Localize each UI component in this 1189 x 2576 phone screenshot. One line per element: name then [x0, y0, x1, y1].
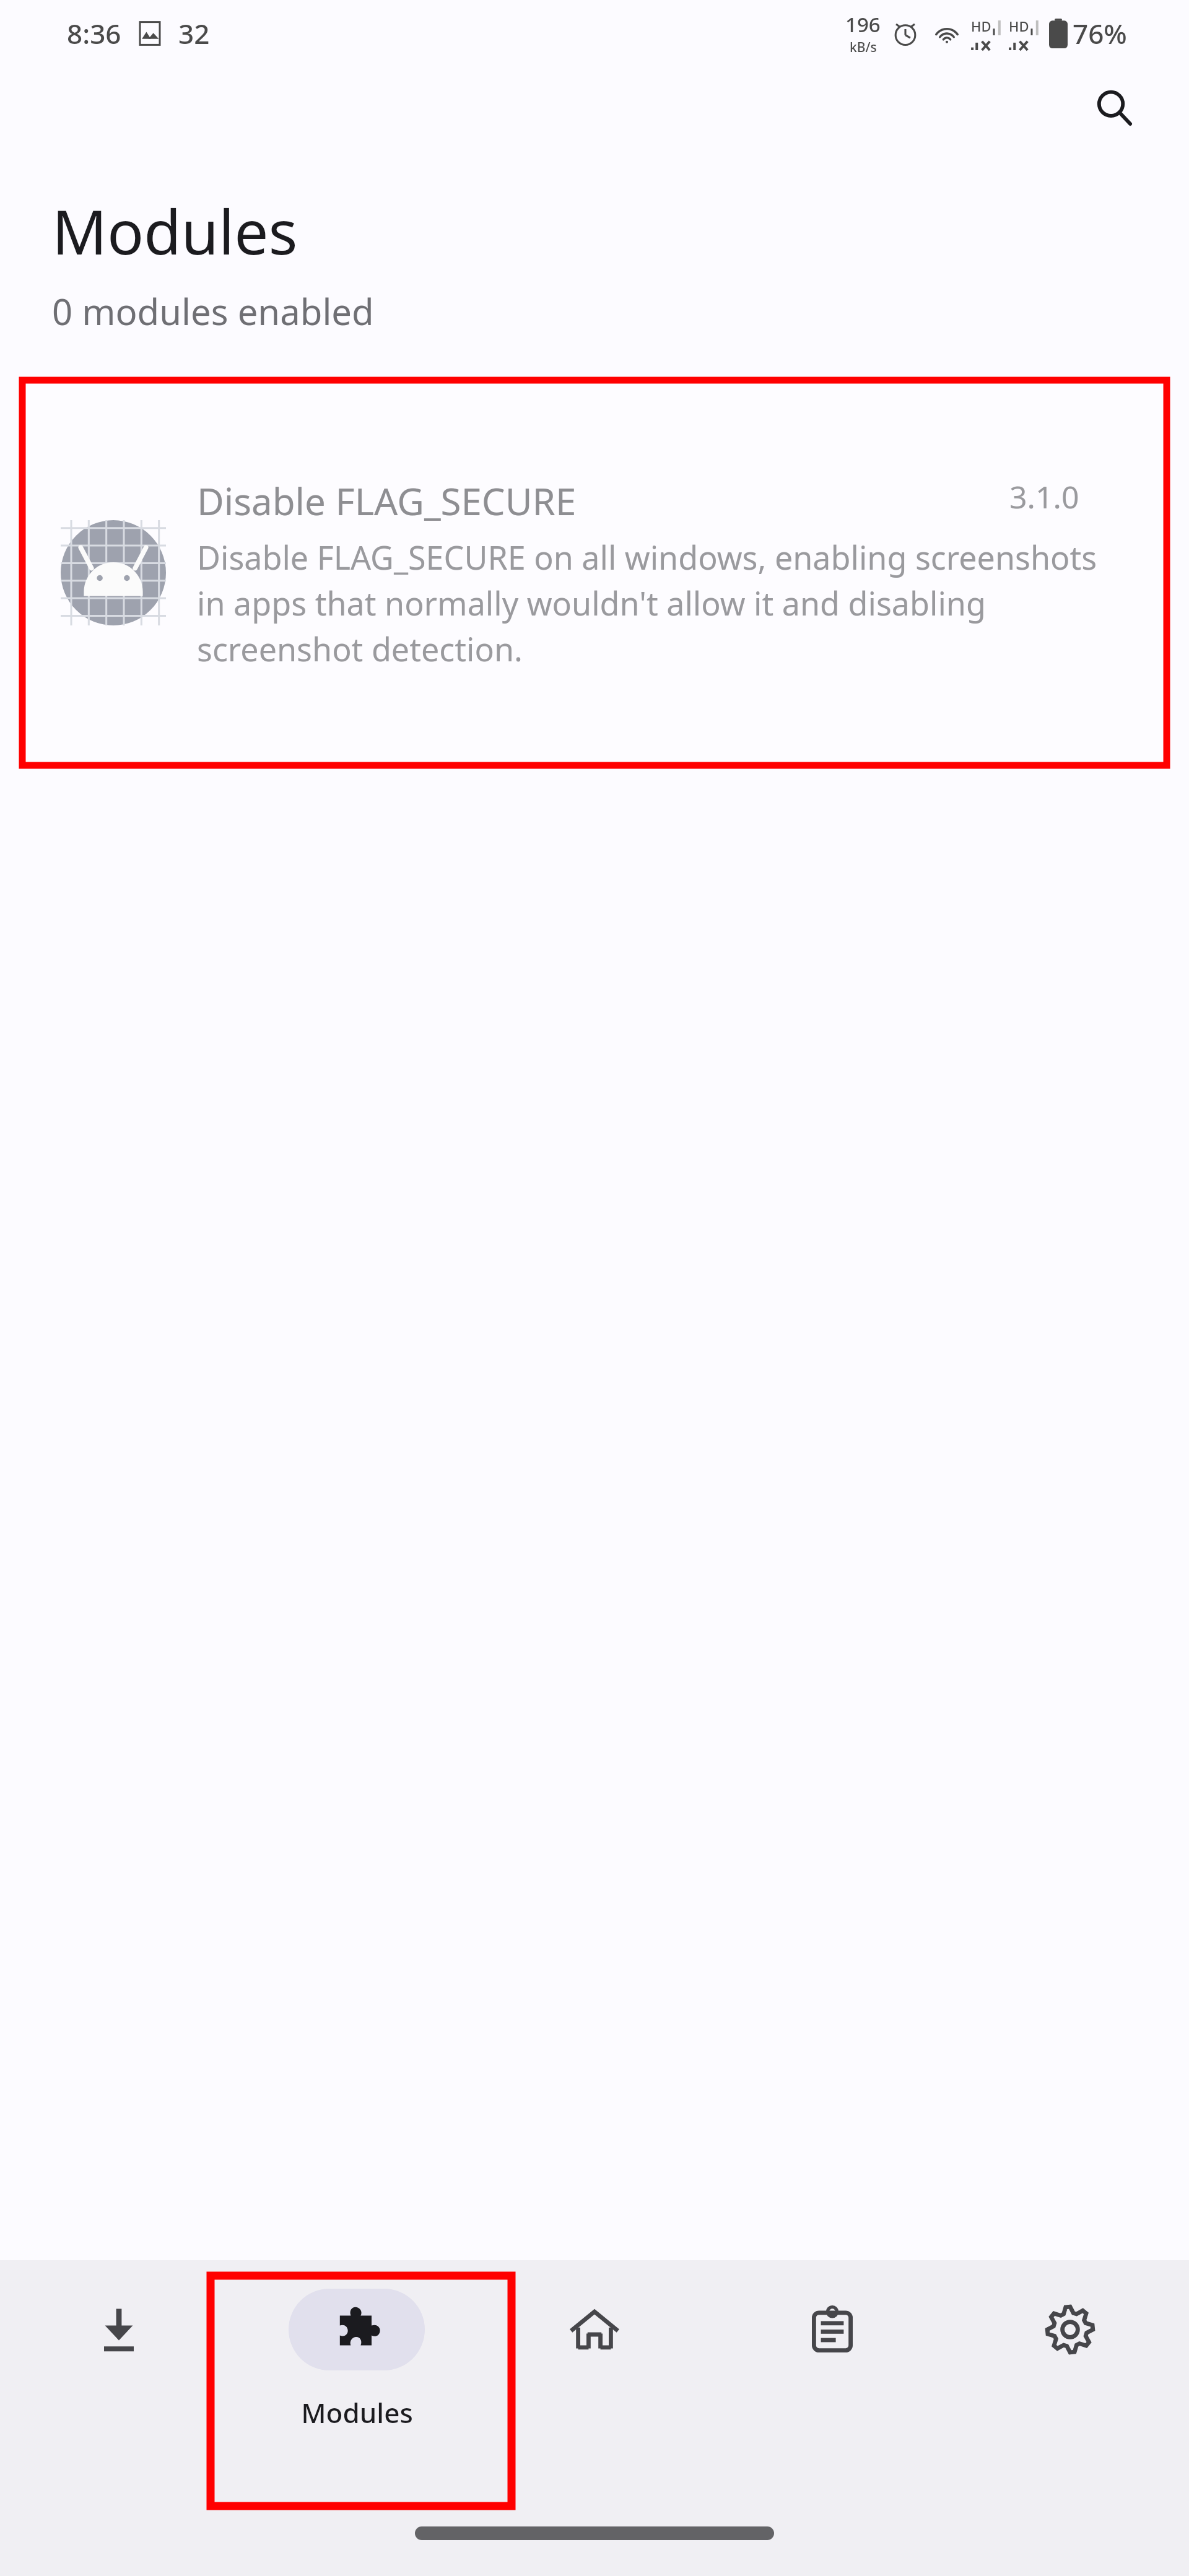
staticText: 76% — [1073, 15, 1127, 52]
button[interactable]: Download — [0, 2260, 238, 2508]
button[interactable]: Search — [1080, 74, 1148, 142]
button[interactable]: Home — [476, 2260, 713, 2508]
staticText: 8:36 — [67, 15, 121, 52]
button[interactable]: Logs — [713, 2260, 951, 2508]
staticText: 3.1.0 — [1009, 476, 1079, 518]
button[interactable]: Disable FLAG_SECURE — [22, 380, 1167, 765]
staticText: HD — [971, 17, 991, 35]
staticText: Disable FLAG_SECURE — [197, 476, 577, 526]
staticText: 196 — [845, 11, 881, 38]
staticText: Modules — [301, 2394, 413, 2431]
staticText: 32 — [178, 15, 210, 52]
staticText: kB/s — [850, 38, 877, 56]
button[interactable]: Modules — [238, 2260, 476, 2508]
button[interactable]: Settings — [951, 2260, 1189, 2508]
staticText: HD — [1009, 17, 1029, 35]
staticText: Modules — [52, 189, 298, 272]
staticText: Disable FLAG_SECURE on all windows, enab… — [197, 535, 1132, 671]
staticText: 0 modules enabled — [52, 287, 374, 336]
